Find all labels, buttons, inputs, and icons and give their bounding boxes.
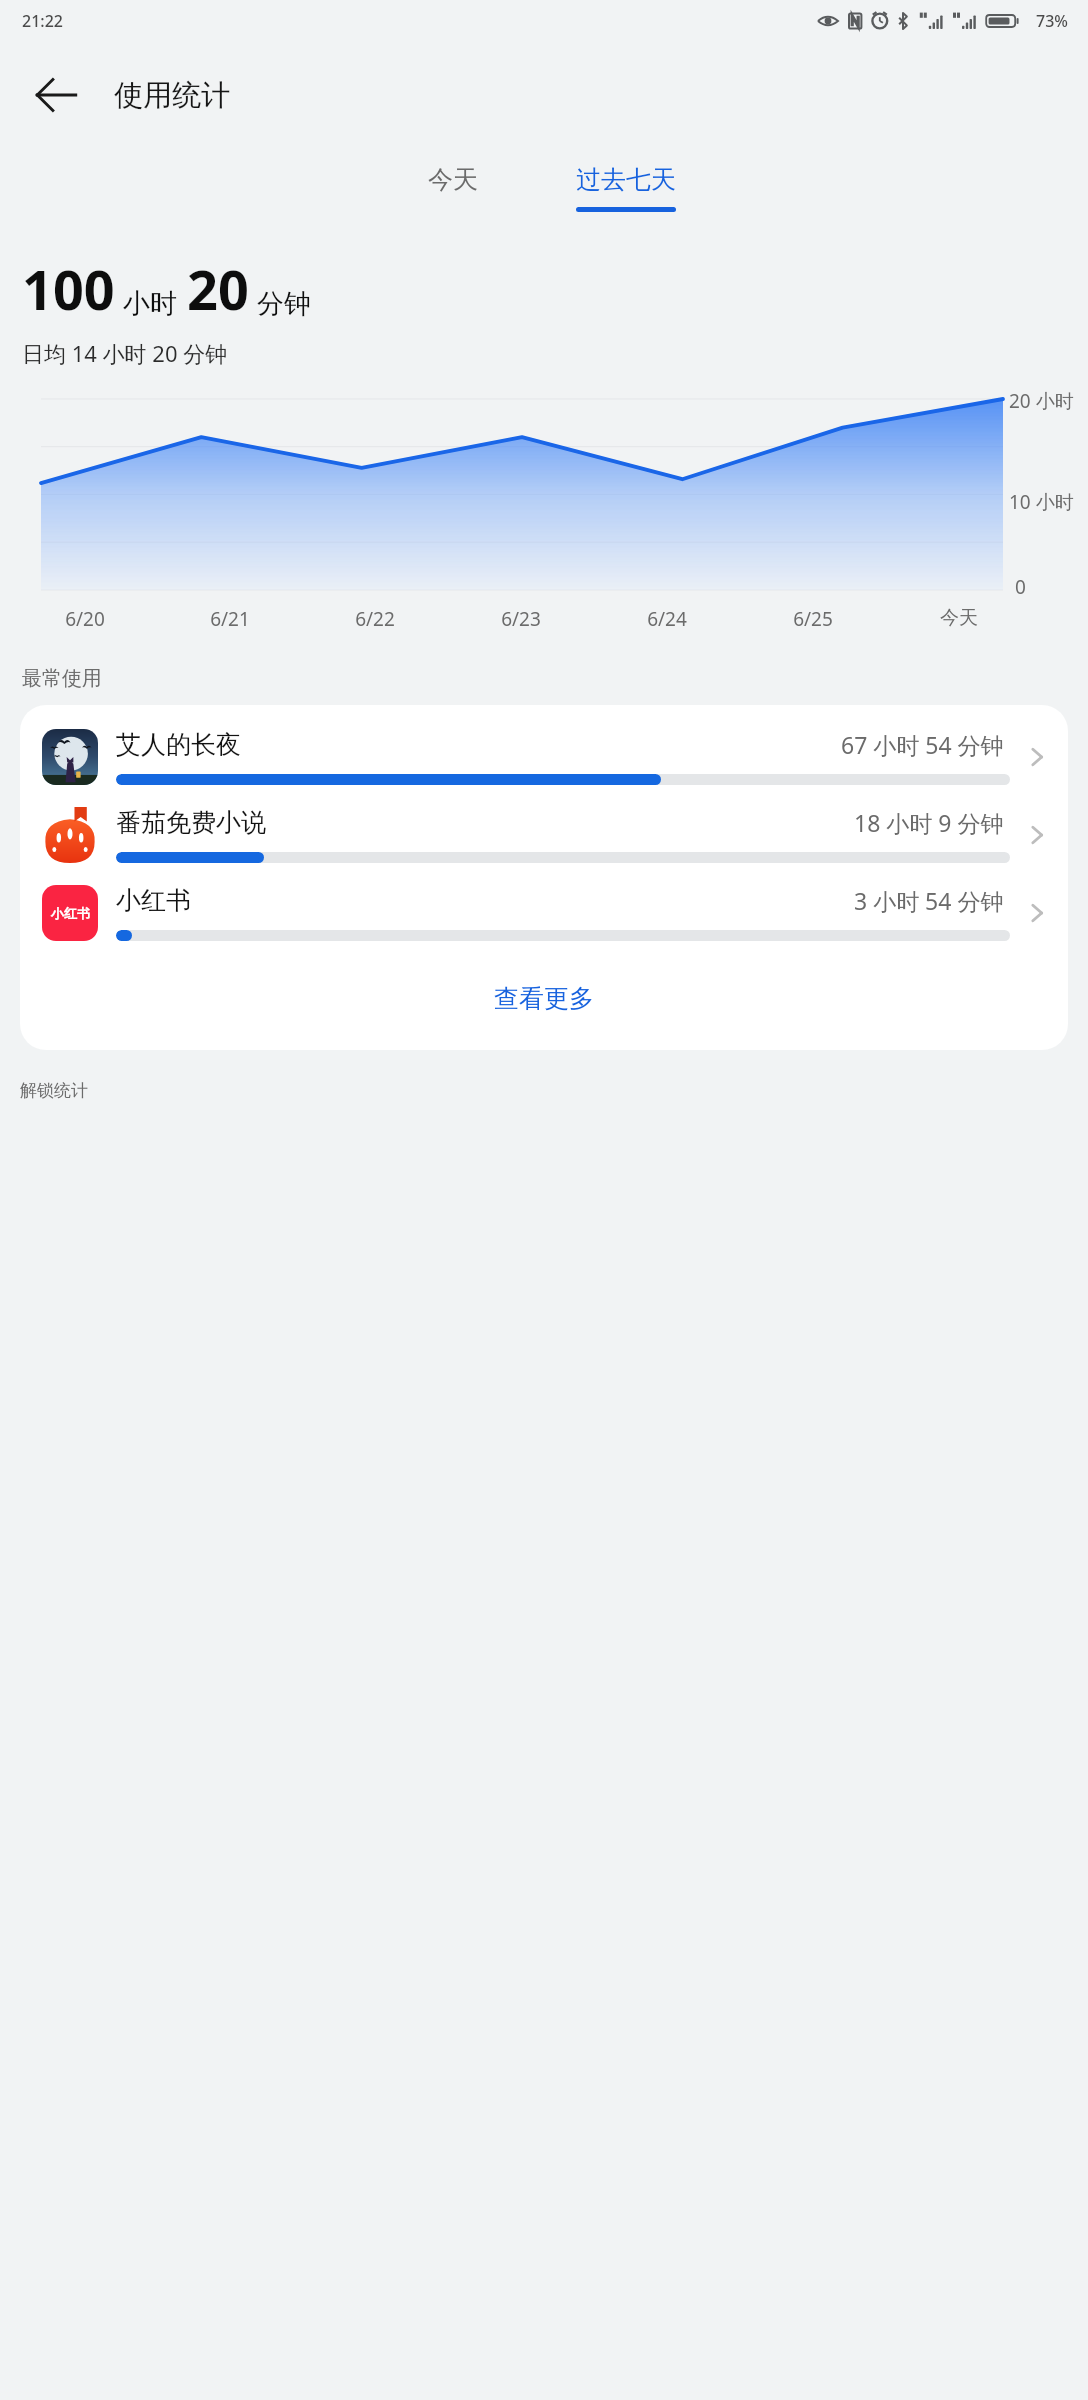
staticText: 18 小时 9 分钟 [854, 807, 1004, 838]
staticText: 6/25 [793, 606, 833, 632]
staticText: 解锁统计 [20, 1080, 88, 1101]
staticText: 6/21 [210, 606, 250, 632]
staticText: 73% [1036, 10, 1068, 32]
staticText: 67 小时 54 分钟 [841, 729, 1004, 760]
staticText: 今天 [940, 606, 978, 630]
staticText: 20 [187, 252, 249, 326]
other: Open 艾人的长夜 details [1020, 740, 1054, 774]
staticText: 6/23 [501, 606, 541, 632]
staticText: 艾人的长夜 [116, 729, 241, 760]
staticText: 3 小时 54 分钟 [854, 885, 1004, 916]
button[interactable]: Back [30, 69, 82, 121]
staticText: 100 [22, 252, 115, 326]
staticText: 查看更多 [494, 983, 594, 1014]
staticText: 6/22 [355, 606, 395, 632]
button[interactable]: 番茄免费小说 [20, 807, 1068, 863]
button[interactable]: 今天 [402, 158, 504, 220]
staticText: 20 小时 [1009, 388, 1074, 414]
staticText: 6/20 [65, 606, 105, 632]
staticText: 0 [1015, 574, 1026, 600]
button[interactable]: 小红书 [20, 885, 1068, 941]
staticText: 小时 [123, 287, 177, 321]
staticText: 21:22 [22, 10, 63, 32]
button[interactable]: 查看更多 [20, 969, 1068, 1028]
staticText: 小红书 [116, 885, 191, 916]
staticText: 小红书 [51, 905, 90, 921]
other: Open 番茄免费小说 details [1020, 818, 1054, 852]
staticText: 分钟 [257, 287, 311, 321]
staticText: 过去七天 [576, 164, 676, 195]
staticText: 6/24 [647, 606, 687, 632]
staticText: 番茄免费小说 [116, 807, 266, 838]
staticText: 使用统计 [114, 77, 230, 114]
staticText: 日均 14 小时 20 分钟 [22, 338, 228, 368]
other: Open 小红书 details [1020, 896, 1054, 930]
staticText: 10 小时 [1009, 489, 1074, 515]
button[interactable]: 过去七天 [566, 158, 686, 218]
staticText: 最常使用 [22, 666, 102, 691]
staticText: 今天 [428, 164, 478, 195]
button[interactable]: 艾人的长夜 [20, 729, 1068, 785]
